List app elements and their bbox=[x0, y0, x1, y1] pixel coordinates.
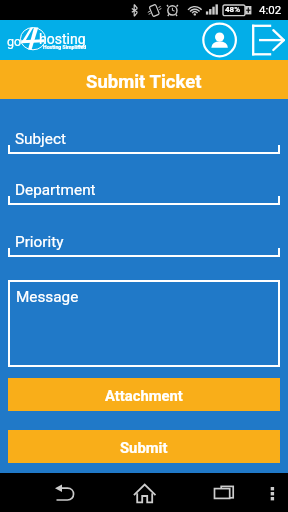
button[interactable]: Recent apps bbox=[205, 473, 244, 512]
button[interactable]: Account bbox=[200, 21, 239, 59]
button[interactable]: Department bbox=[8, 176, 280, 206]
button[interactable]: Message bbox=[8, 280, 280, 367]
button[interactable]: More options bbox=[254, 473, 288, 512]
button[interactable]: Logout bbox=[248, 21, 288, 59]
button[interactable]: go bbox=[0, 20, 92, 60]
staticText: go bbox=[7, 34, 22, 49]
staticText: Message bbox=[16, 288, 79, 306]
staticText: hosting bbox=[39, 31, 86, 47]
staticText: Submit bbox=[120, 439, 168, 456]
button[interactable]: Submit bbox=[8, 430, 280, 463]
staticText: Priority bbox=[15, 233, 64, 251]
button[interactable]: Back bbox=[45, 473, 84, 512]
button[interactable]: Attachment bbox=[8, 378, 280, 411]
staticText: Attachment bbox=[105, 387, 183, 404]
staticText: Subject bbox=[15, 130, 66, 148]
staticText: 4:02 bbox=[259, 3, 282, 16]
button[interactable]: Subject bbox=[8, 125, 280, 155]
staticText: Submit Ticket bbox=[86, 71, 202, 93]
staticText: 48% bbox=[225, 5, 241, 14]
staticText: Hosting Simplified bbox=[43, 44, 87, 50]
button[interactable]: Home bbox=[124, 473, 163, 512]
button[interactable]: Priority bbox=[8, 228, 280, 258]
staticText: Department bbox=[15, 181, 96, 199]
